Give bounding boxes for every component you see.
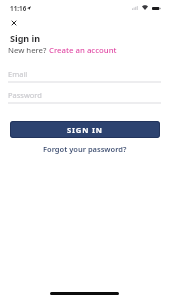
button[interactable]: Close (3, 12, 24, 33)
staticText: SIGN IN (67, 125, 103, 135)
staticText: Forgot your password? (43, 144, 127, 154)
button[interactable]: Password (8, 87, 161, 104)
button[interactable]: SIGN IN (10, 121, 160, 138)
staticText: Sign in (10, 32, 41, 44)
button[interactable]: Email (8, 66, 161, 83)
staticText: Create an account (49, 45, 117, 56)
staticText: 11:16 (10, 4, 27, 12)
staticText: Password (8, 90, 42, 100)
button[interactable]: Create an account (49, 45, 117, 56)
staticText: Email (8, 69, 28, 79)
button[interactable]: Forgot your password? (41, 142, 129, 156)
staticText: New here? (8, 45, 49, 56)
